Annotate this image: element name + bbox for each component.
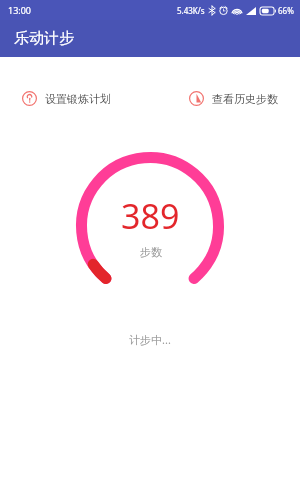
staticText: 5.43K/s [177, 5, 205, 16]
staticText: 设置锻炼计划 [45, 92, 111, 106]
staticText: 步数 [140, 245, 162, 259]
staticText: 66% [278, 5, 294, 16]
staticText: 计步中... [0, 332, 300, 347]
button[interactable]: 设置锻炼计划 [22, 87, 111, 110]
staticText: 乐动计步 [14, 29, 74, 48]
button[interactable]: 查看历史步数 [189, 87, 278, 110]
staticText: 13:00 [8, 4, 32, 16]
staticText: 查看历史步数 [212, 92, 278, 106]
staticText: 389 [121, 193, 180, 239]
